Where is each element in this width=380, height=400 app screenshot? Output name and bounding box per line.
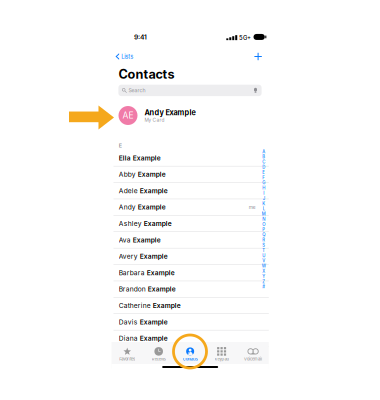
staticText: W	[262, 263, 266, 269]
staticText: Recents	[152, 357, 166, 361]
staticText: Keypad	[215, 357, 229, 361]
button[interactable]: Favorites	[111, 342, 143, 369]
staticText: Ella Example	[119, 154, 161, 162]
staticText: N	[262, 217, 265, 222]
staticText: Y	[262, 274, 265, 279]
staticText: C	[262, 159, 265, 165]
staticText: Lists	[121, 53, 133, 60]
staticText: Ava Example	[119, 236, 161, 244]
staticText: S	[262, 243, 265, 248]
button[interactable]: Catherine Example	[111, 298, 269, 314]
staticText: F	[262, 175, 265, 180]
button[interactable]: Abby Example	[111, 166, 269, 183]
staticText: J	[263, 196, 265, 201]
staticText: AE	[122, 110, 133, 120]
staticText: 9:41	[134, 33, 147, 41]
staticText: I	[263, 191, 264, 196]
staticText: Avery Example	[119, 252, 168, 260]
staticText: Voicemail	[244, 357, 262, 361]
button[interactable]: Recents	[143, 342, 174, 369]
staticText: M	[262, 211, 266, 217]
button[interactable]: Search	[118, 85, 262, 96]
staticText: T	[262, 248, 265, 253]
staticText: Andy Example	[144, 108, 195, 117]
button[interactable]: Adele Example	[111, 183, 269, 199]
button[interactable]: Diana Example	[111, 330, 269, 347]
button[interactable]: AE	[111, 104, 269, 127]
staticText: E	[119, 142, 122, 149]
staticText: Davis Example	[119, 318, 168, 326]
staticText: Abby Example	[119, 170, 166, 178]
staticText: me	[249, 204, 256, 210]
button[interactable]: Voicemail	[237, 342, 269, 369]
staticText: U	[262, 253, 265, 258]
staticText: Search	[129, 87, 146, 94]
staticText: G	[262, 180, 265, 185]
staticText: Ashley Example	[119, 220, 172, 227]
staticText: Z	[262, 279, 265, 284]
staticText: O	[262, 222, 265, 227]
staticText: Contacts	[183, 357, 198, 361]
staticText: Brandon Example	[119, 285, 176, 293]
staticText: 5G+	[239, 34, 251, 41]
staticText: H	[262, 185, 265, 191]
staticText: K	[262, 201, 265, 206]
staticText: Andy Example	[119, 203, 166, 211]
staticText: Barbara Example	[119, 269, 175, 277]
staticText: L	[263, 206, 265, 211]
staticText: A	[262, 149, 265, 154]
staticText: Adele Example	[119, 187, 168, 195]
staticText: E	[262, 170, 265, 175]
button[interactable]: Lists	[111, 50, 138, 63]
button[interactable]: Avery Example	[111, 248, 269, 265]
button[interactable]: Andy Example	[111, 199, 269, 216]
staticText: My Card	[144, 117, 164, 123]
button[interactable]: Barbara Example	[111, 265, 269, 281]
staticText: Catherine Example	[119, 302, 181, 309]
staticText: Diana Example	[119, 334, 168, 342]
button[interactable]: Ella Example	[111, 150, 269, 166]
button[interactable]: Contacts	[174, 342, 206, 369]
staticText: Q	[262, 232, 265, 237]
staticText: Contacts	[118, 67, 174, 82]
staticText: #	[262, 284, 265, 289]
staticText: P	[262, 227, 265, 232]
staticText: D	[262, 165, 265, 170]
staticText: V	[262, 258, 265, 263]
button[interactable]: Ashley Example	[111, 216, 269, 232]
staticText: X	[262, 269, 265, 274]
staticText: R	[262, 237, 265, 243]
staticText: B	[262, 154, 265, 159]
button[interactable]: Brandon Example	[111, 281, 269, 298]
button[interactable]: Davis Example	[111, 314, 269, 330]
button[interactable]: Add contact	[249, 50, 269, 63]
button[interactable]: Ava Example	[111, 232, 269, 248]
staticText: Favorites	[119, 357, 135, 361]
button[interactable]: Keypad	[206, 342, 237, 369]
